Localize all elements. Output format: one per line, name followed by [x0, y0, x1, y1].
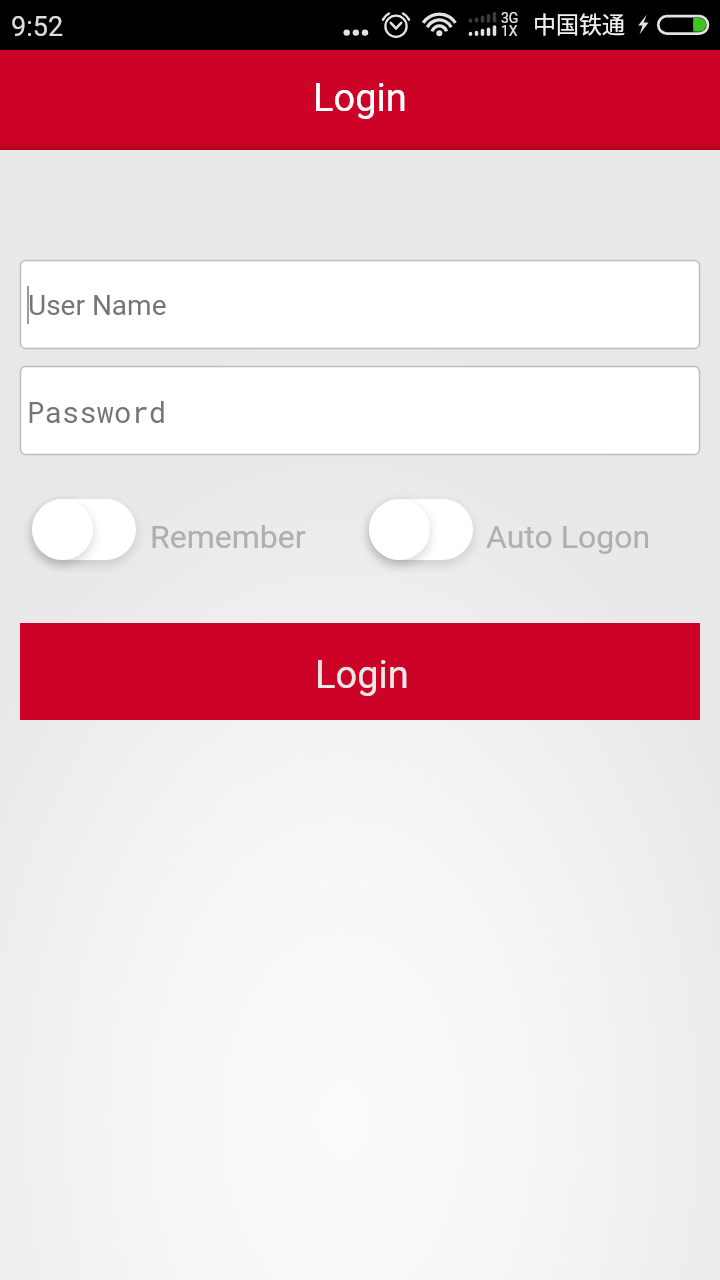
staticText: Login — [315, 653, 409, 698]
staticText: 3G — [501, 10, 519, 26]
staticText: User Name — [28, 289, 167, 322]
staticText: Auto Logon — [486, 518, 651, 556]
staticText: 中国铁通 — [533, 6, 625, 39]
button[interactable]: Login — [20, 623, 700, 720]
staticText: 9:52 — [11, 11, 64, 43]
staticText: 1X — [501, 23, 518, 39]
button[interactable]: Auto Logon — [359, 489, 484, 574]
staticText: Remember — [150, 518, 306, 556]
staticText: Login — [313, 76, 407, 121]
staticText: Password — [27, 393, 167, 431]
button[interactable]: Remember — [22, 489, 147, 574]
button[interactable]: User Name — [20, 260, 700, 349]
button[interactable]: Password — [20, 366, 700, 455]
